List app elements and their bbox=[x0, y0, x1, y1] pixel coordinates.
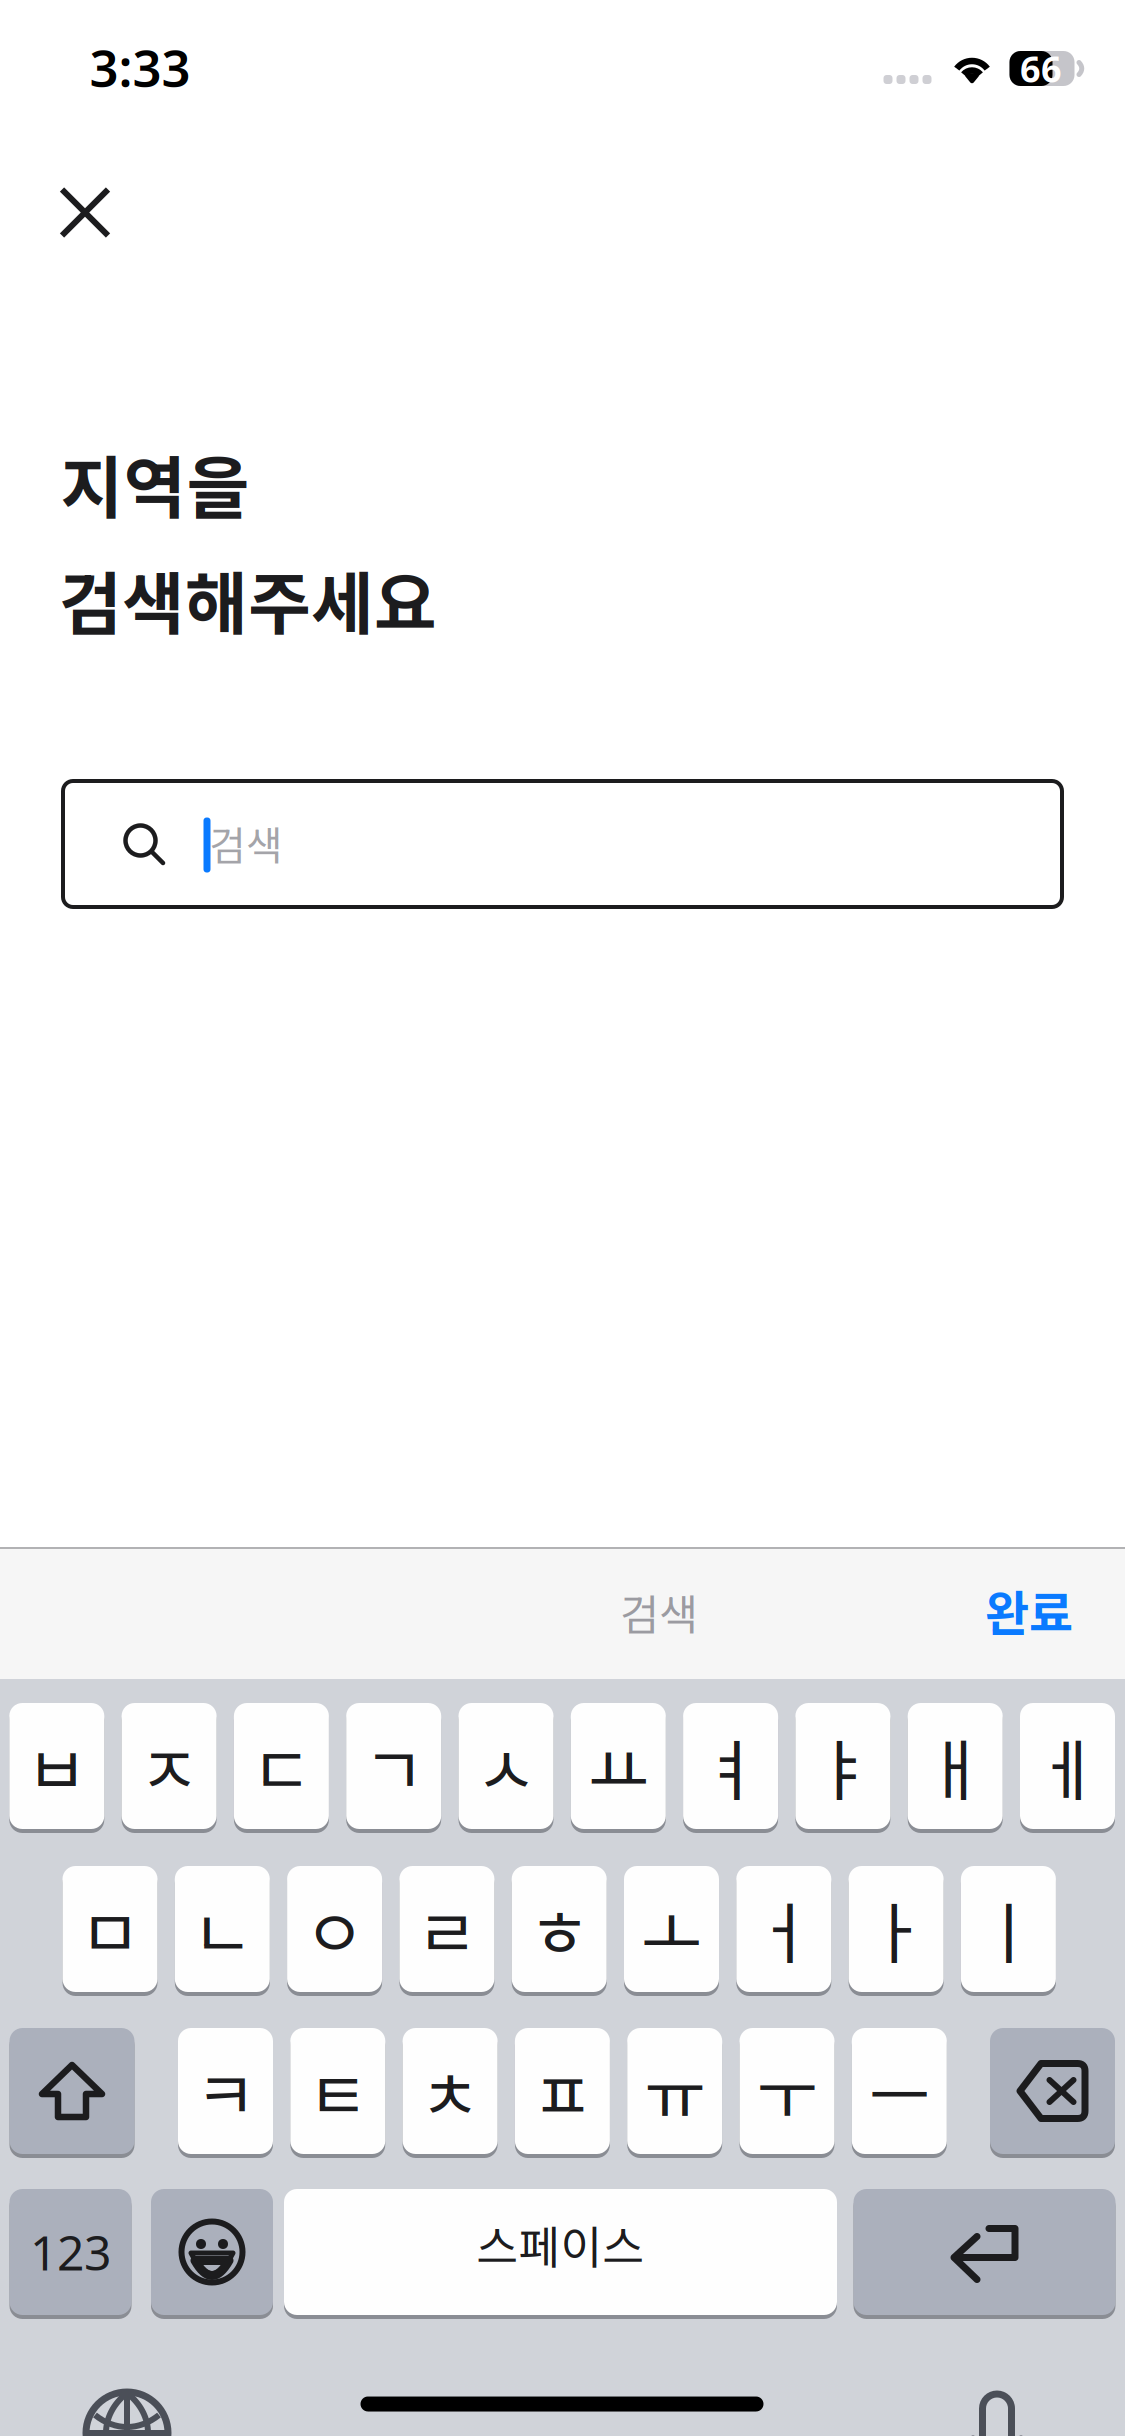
button[interactable]: Shift bbox=[9, 2024, 134, 2158]
staticText: ㅓ bbox=[753, 1881, 814, 1977]
button[interactable]: ㅣ bbox=[961, 1862, 1056, 1996]
staticText: 검색 bbox=[620, 1581, 698, 1643]
button[interactable]: ㅓ bbox=[736, 1862, 831, 1996]
staticText: ㅜ bbox=[756, 2043, 817, 2139]
staticText: ㅛ bbox=[588, 1718, 649, 1814]
button[interactable]: ㅅ bbox=[458, 1699, 553, 1833]
button[interactable]: Dictation bbox=[937, 2381, 1057, 2436]
button[interactable]: ㅊ bbox=[403, 2024, 498, 2158]
button[interactable]: ㅗ bbox=[624, 1862, 719, 1996]
button[interactable]: Delete bbox=[990, 2024, 1115, 2158]
staticText: ㅇ bbox=[304, 1881, 365, 1977]
button[interactable]: ㅇ bbox=[287, 1862, 382, 1996]
staticText: ㅍ bbox=[532, 2043, 593, 2139]
button[interactable]: ㅏ bbox=[849, 1862, 944, 1996]
staticText: 지역을 bbox=[60, 434, 249, 532]
button[interactable]: Search bbox=[61, 779, 1064, 909]
staticText: ㅠ bbox=[644, 2043, 705, 2139]
staticText: ㅈ bbox=[139, 1718, 200, 1814]
staticText: ㅐ bbox=[925, 1718, 986, 1814]
staticText: ㅌ bbox=[307, 2043, 368, 2139]
staticText: ㄷ bbox=[251, 1718, 312, 1814]
button[interactable]: ㅎ bbox=[512, 1862, 607, 1996]
staticText: ㅋ bbox=[195, 2043, 256, 2139]
button[interactable]: Close bbox=[25, 152, 145, 272]
button[interactable]: Return bbox=[853, 2185, 1115, 2319]
button[interactable]: Emoji bbox=[151, 2185, 273, 2319]
staticText: ㄴ bbox=[192, 1881, 253, 1977]
button[interactable]: ㅠ bbox=[627, 2024, 722, 2158]
staticText: ㄹ bbox=[416, 1881, 477, 1977]
button[interactable]: ㅂ bbox=[9, 1699, 104, 1833]
button[interactable]: ㅋ bbox=[178, 2024, 273, 2158]
staticText: 스페이스 bbox=[476, 2211, 644, 2277]
staticText: 검색 bbox=[209, 814, 283, 872]
button[interactable]: ㄱ bbox=[346, 1699, 441, 1833]
button[interactable]: ㄴ bbox=[175, 1862, 270, 1996]
button[interactable]: ㅐ bbox=[908, 1699, 1003, 1833]
staticText: ㅏ bbox=[866, 1881, 927, 1977]
staticText: ㅁ bbox=[79, 1881, 140, 1977]
button[interactable]: ㅜ bbox=[739, 2024, 834, 2158]
button[interactable]: 스페이스 bbox=[284, 2185, 837, 2319]
staticText: ㅂ bbox=[26, 1718, 87, 1814]
staticText: 123 bbox=[30, 2220, 111, 2284]
staticText: ㅎ bbox=[529, 1881, 590, 1977]
staticText: 66 bbox=[1020, 45, 1062, 92]
button[interactable]: Next keyboard bbox=[67, 2378, 187, 2436]
button[interactable]: ㅔ bbox=[1020, 1699, 1115, 1833]
button[interactable]: ㄹ bbox=[399, 1862, 494, 1996]
button[interactable]: ㅑ bbox=[795, 1699, 890, 1833]
button[interactable]: ㅕ bbox=[683, 1699, 778, 1833]
button[interactable]: ㅌ bbox=[290, 2024, 385, 2158]
button[interactable]: ㅍ bbox=[515, 2024, 610, 2158]
staticText: ㄱ bbox=[363, 1718, 424, 1814]
staticText: ㅔ bbox=[1037, 1718, 1098, 1814]
button[interactable]: 123 bbox=[9, 2185, 131, 2319]
button[interactable]: ㅈ bbox=[122, 1699, 217, 1833]
staticText: 검색해주세요 bbox=[59, 550, 437, 648]
button[interactable]: ㄷ bbox=[234, 1699, 329, 1833]
button[interactable]: ㅛ bbox=[571, 1699, 666, 1833]
staticText: ㅅ bbox=[475, 1718, 536, 1814]
button[interactable]: ㅡ bbox=[852, 2024, 947, 2158]
staticText: 3:33 bbox=[89, 33, 190, 101]
staticText: ㅕ bbox=[700, 1718, 761, 1814]
staticText: ㅊ bbox=[420, 2043, 481, 2139]
button[interactable]: ㅁ bbox=[62, 1862, 157, 1996]
button[interactable]: 완료 bbox=[967, 1561, 1091, 1659]
staticText: ㅣ bbox=[978, 1881, 1039, 1977]
staticText: ㅑ bbox=[812, 1718, 873, 1814]
staticText: ㅗ bbox=[641, 1881, 702, 1977]
staticText: ㅡ bbox=[869, 2043, 930, 2139]
staticText: 완료 bbox=[985, 1575, 1073, 1645]
